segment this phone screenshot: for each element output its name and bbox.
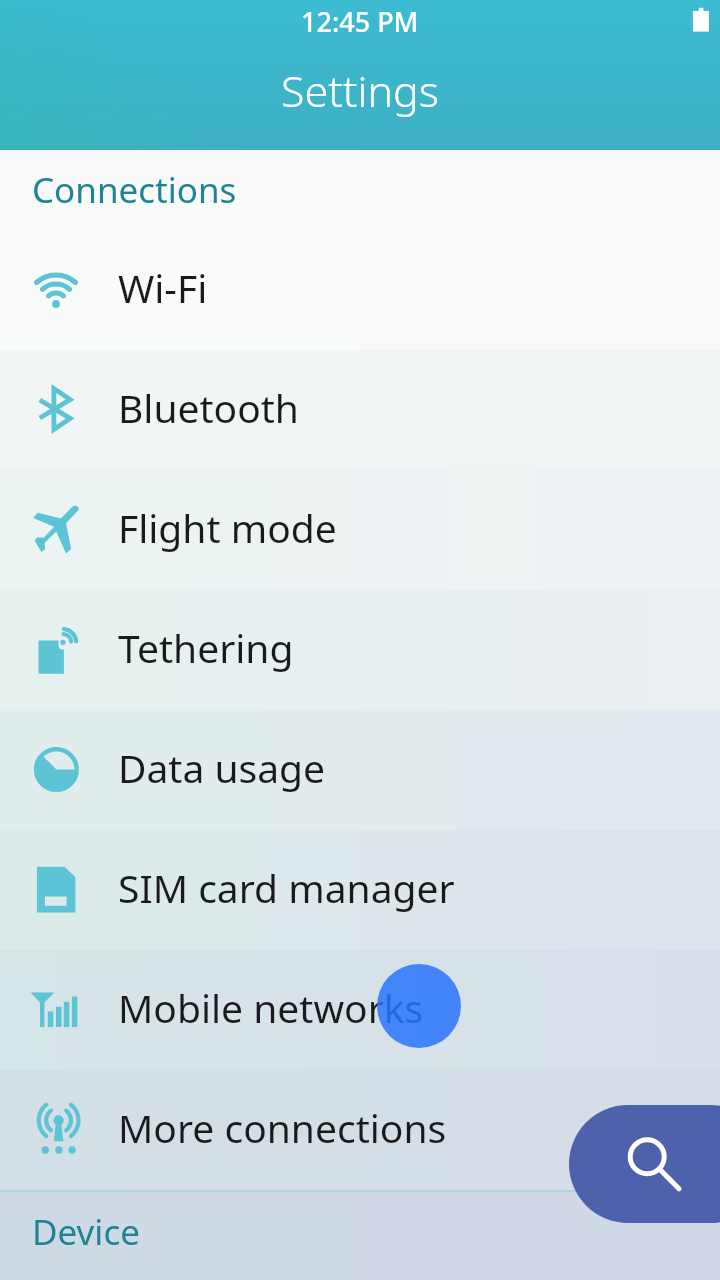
- staticText: Mobile networks: [118, 981, 424, 1034]
- button[interactable]: Flight mode: [0, 470, 720, 590]
- staticText: Connections: [32, 166, 237, 214]
- staticText: Wi-Fi: [118, 261, 208, 314]
- staticText: SIM card manager: [118, 861, 455, 914]
- staticText: Bluetooth: [118, 381, 299, 434]
- staticText: More connections: [118, 1101, 447, 1154]
- button[interactable]: Bluetooth: [0, 350, 720, 470]
- staticText: Data usage: [118, 741, 326, 794]
- staticText: Device: [32, 1208, 140, 1256]
- button[interactable]: SIM card manager: [0, 830, 720, 950]
- staticText: Flight mode: [118, 501, 337, 554]
- staticText: Settings: [281, 61, 439, 120]
- staticText: 12:45 PM: [301, 3, 419, 40]
- button[interactable]: Data usage: [0, 710, 720, 830]
- button[interactable]: Wi-Fi: [0, 230, 720, 350]
- button[interactable]: More connections: [0, 1070, 720, 1190]
- button[interactable]: Mobile networks: [0, 950, 720, 1070]
- button[interactable]: Search: [569, 1105, 720, 1223]
- button[interactable]: Tethering: [0, 590, 720, 710]
- staticText: Tethering: [118, 621, 294, 674]
